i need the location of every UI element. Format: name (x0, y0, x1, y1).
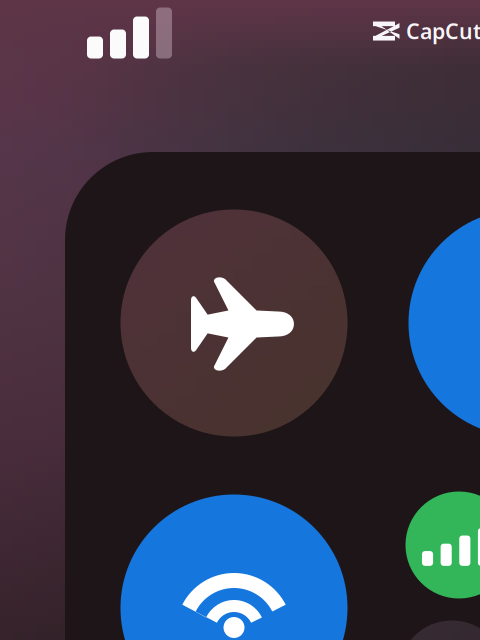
button[interactable]: Airplane Mode (120, 209, 347, 436)
button[interactable]: Cellular Data (408, 209, 480, 436)
button[interactable]: Personal Hotspot (405, 491, 480, 598)
button[interactable]: AirDrop (398, 620, 480, 640)
staticText: CapCut (406, 17, 480, 45)
button[interactable]: Wi-Fi (120, 494, 347, 640)
